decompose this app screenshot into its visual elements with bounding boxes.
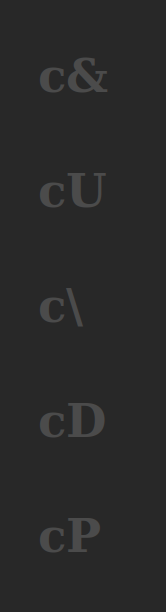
button[interactable]: cU (0, 133, 166, 248)
staticText: c& (38, 48, 108, 103)
staticText: cD (38, 393, 106, 448)
staticText: cP (38, 508, 101, 563)
button[interactable]: cP (0, 478, 166, 593)
button[interactable]: c\ (0, 248, 166, 363)
button[interactable]: c& (0, 18, 166, 133)
button[interactable]: cD (0, 363, 166, 478)
staticText: c\ (38, 278, 83, 333)
staticText: cU (38, 163, 107, 218)
